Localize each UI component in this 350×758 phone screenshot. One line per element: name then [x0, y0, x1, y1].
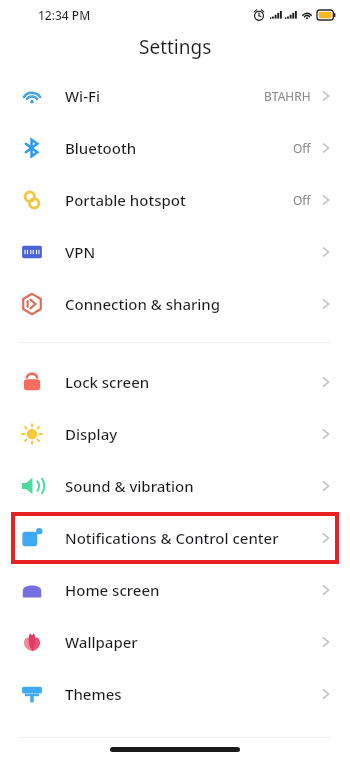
staticText: Lock screen — [65, 372, 150, 392]
button[interactable]: Lock screen — [0, 356, 350, 408]
button[interactable]: Home screen — [0, 564, 350, 616]
button[interactable]: Notifications & Control center — [11, 512, 339, 564]
staticText: Off — [293, 140, 311, 156]
button[interactable]: Wallpaper — [0, 616, 350, 668]
staticText: Bluetooth — [65, 138, 137, 158]
staticText: Home screen — [65, 580, 160, 600]
staticText: BTAHRH — [264, 88, 311, 104]
staticText: 12:34 PM — [38, 7, 91, 23]
staticText: Wi-Fi — [65, 86, 100, 106]
button[interactable]: VPN — [0, 226, 350, 278]
staticText: Themes — [65, 684, 122, 704]
staticText: Settings — [139, 34, 212, 60]
button[interactable]: Sound & vibration — [0, 460, 350, 512]
staticText: Connection & sharing — [65, 294, 221, 314]
staticText: Off — [293, 192, 311, 208]
staticText: Notifications & Control center — [65, 528, 279, 548]
button[interactable]: Display — [0, 408, 350, 460]
button[interactable]: Portable hotspot — [0, 174, 350, 226]
button[interactable]: Wi-Fi — [0, 70, 350, 122]
button[interactable]: Connection & sharing — [0, 278, 350, 330]
button[interactable]: Themes — [0, 668, 350, 720]
staticText: Sound & vibration — [65, 476, 194, 496]
staticText: Wallpaper — [65, 632, 138, 652]
staticText: Portable hotspot — [65, 190, 186, 210]
staticText: VPN — [65, 242, 96, 262]
staticText: Display — [65, 424, 118, 444]
button[interactable]: Bluetooth — [0, 122, 350, 174]
